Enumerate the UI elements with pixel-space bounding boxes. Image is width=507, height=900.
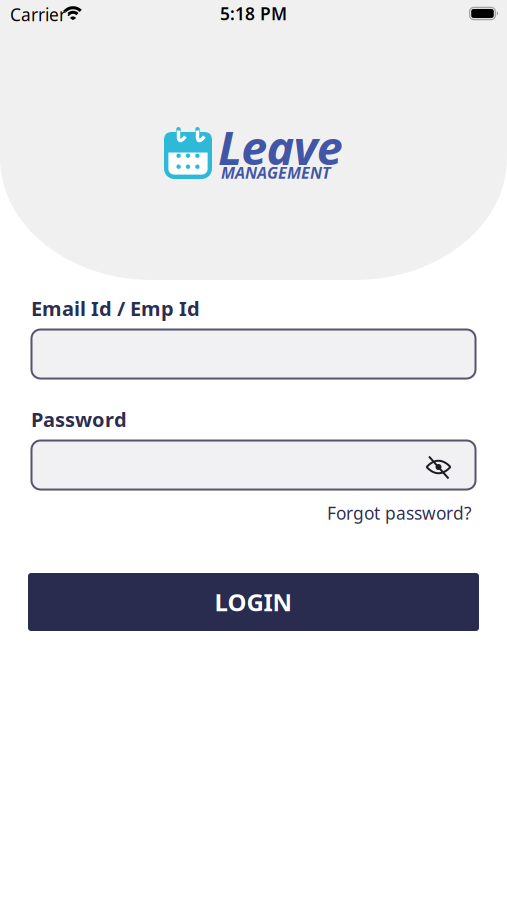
button[interactable]: Email Id / Emp Id (30, 328, 476, 379)
staticText: Leave (218, 116, 343, 178)
staticText: Password (31, 406, 127, 433)
button[interactable]: Password (30, 439, 476, 490)
staticText: MANAGEMENT (221, 162, 331, 183)
button[interactable]: LOGIN (28, 573, 479, 631)
staticText: 5:18 PM (220, 2, 287, 25)
button[interactable]: Show password (417, 448, 460, 486)
staticText: Carrier (10, 3, 66, 26)
staticText: Forgot password? (327, 501, 472, 524)
staticText: Email Id / Emp Id (31, 295, 200, 322)
staticText: LOGIN (214, 586, 292, 618)
button[interactable]: Forgot password? (327, 501, 472, 524)
